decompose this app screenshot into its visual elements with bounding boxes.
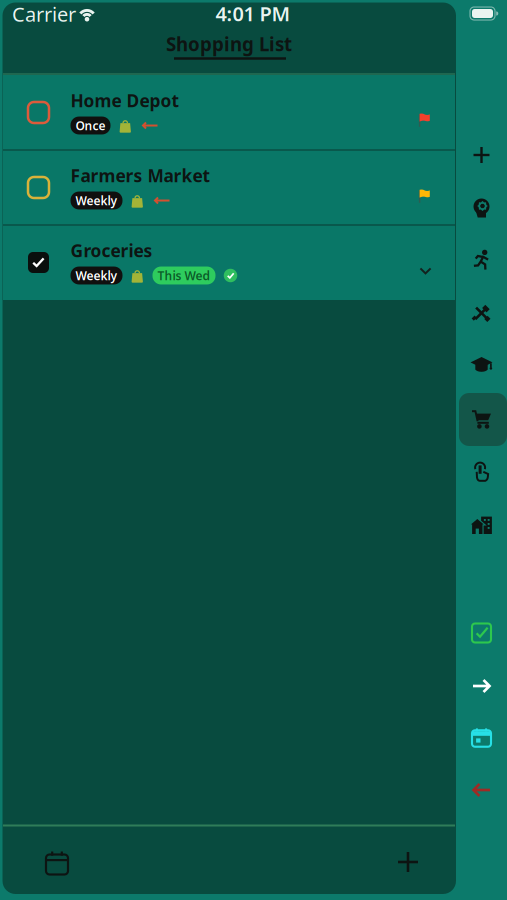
staticText: 4:01 PM	[215, 0, 290, 27]
button[interactable]: Touch	[459, 448, 503, 496]
button[interactable]: Completed	[459, 609, 503, 657]
staticText: Once	[75, 117, 105, 133]
staticText: Home Depot	[70, 89, 179, 112]
button[interactable]: Groceries	[2, 225, 455, 300]
button[interactable]: Schedule	[459, 713, 503, 761]
staticText: Shopping List	[166, 32, 292, 56]
button[interactable]: Forward	[459, 662, 503, 710]
button[interactable]: Add	[386, 842, 430, 882]
staticText: Weekly	[75, 192, 117, 208]
staticText: Weekly	[75, 267, 117, 283]
button[interactable]: School	[459, 341, 503, 389]
button[interactable]: Activity	[459, 236, 503, 284]
staticText: Groceries	[70, 239, 152, 262]
button[interactable]: Back	[459, 766, 503, 814]
staticText: This Wed	[157, 267, 210, 283]
button[interactable]: Farmers Market	[2, 150, 455, 225]
button[interactable]: Home Depot	[2, 75, 455, 150]
button[interactable]: Mind	[459, 184, 503, 232]
button[interactable]: Shopping	[459, 395, 503, 443]
button[interactable]: Calendar	[35, 842, 79, 882]
staticText: Carrier	[12, 1, 76, 27]
button[interactable]: Home	[459, 501, 503, 549]
button[interactable]: Projects	[459, 289, 503, 337]
staticText: Farmers Market	[70, 164, 210, 187]
button[interactable]: Add list	[459, 131, 503, 179]
